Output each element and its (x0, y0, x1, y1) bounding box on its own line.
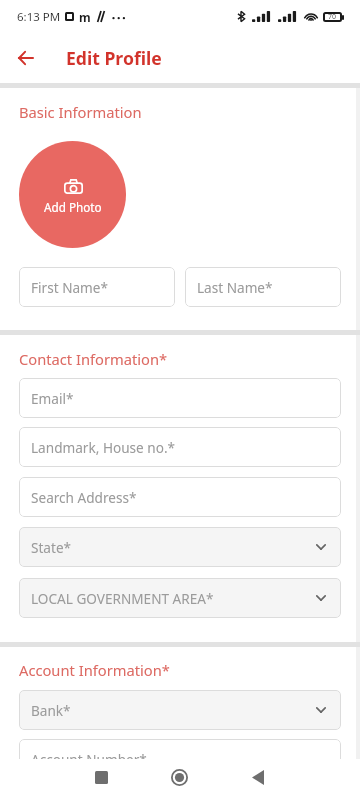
staticText: m (79, 9, 91, 25)
staticText: 6:13 PM (17, 9, 61, 25)
staticText: Account Information* (19, 660, 170, 680)
button[interactable]: Bank* (19, 690, 341, 730)
button[interactable]: Last Name* (185, 267, 341, 307)
staticText: Account Number* (31, 750, 147, 769)
staticText: Search Address* (31, 488, 137, 507)
staticText: Basic Information (19, 102, 142, 122)
button[interactable]: Search Address* (19, 477, 341, 517)
button[interactable]: Account Number* (19, 739, 341, 779)
button[interactable]: Home (157, 757, 201, 798)
staticText: Last Name* (197, 278, 273, 297)
staticText: Add Photo (44, 199, 102, 215)
button[interactable]: Landmark, House no.* (19, 427, 341, 467)
button[interactable]: Add Photo (19, 141, 126, 248)
staticText: Email* (31, 389, 74, 408)
button[interactable]: First Name* (19, 267, 175, 307)
button[interactable]: State* (19, 527, 341, 567)
button[interactable]: Back (236, 757, 280, 798)
staticText: Contact Information* (19, 349, 168, 369)
staticText: LOCAL GOVERNMENT AREA* (31, 589, 214, 608)
staticText: Edit Profile (66, 46, 162, 70)
button[interactable]: Email* (19, 378, 341, 418)
button[interactable]: Recents (79, 757, 123, 798)
button[interactable]: Back (12, 45, 38, 71)
staticText: Bank* (31, 701, 71, 720)
staticText: Landmark, House no.* (31, 438, 176, 457)
staticText: State* (31, 538, 72, 557)
staticText: First Name* (31, 278, 108, 297)
button[interactable]: LOCAL GOVERNMENT AREA* (19, 578, 341, 618)
staticText: 70 (328, 12, 337, 22)
